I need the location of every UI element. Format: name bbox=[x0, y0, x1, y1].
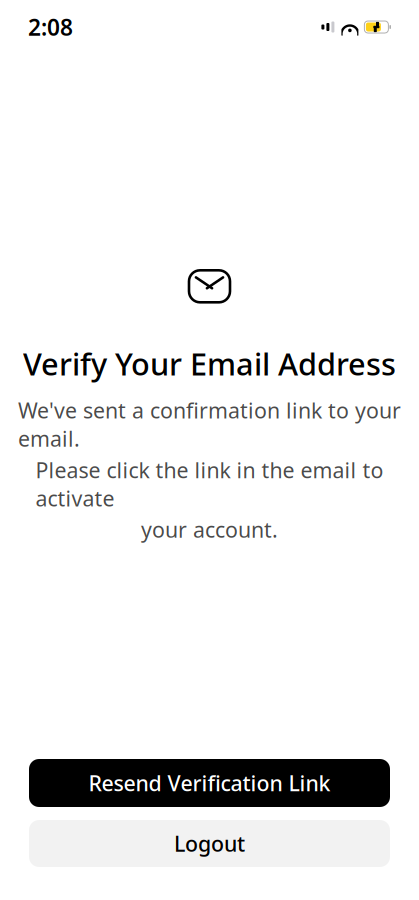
staticText: 2:08 bbox=[28, 12, 73, 42]
staticText: We've sent a confirmation link to your e… bbox=[18, 396, 401, 453]
staticText: your account. bbox=[141, 515, 278, 544]
staticText: Please click the link in the email to ac… bbox=[35, 456, 383, 512]
staticText: Verify Your Email Address bbox=[23, 343, 396, 384]
button[interactable]: Resend Verification Link bbox=[29, 759, 390, 807]
button[interactable]: Logout bbox=[29, 820, 390, 867]
staticText: Logout bbox=[174, 829, 245, 858]
staticText: Resend Verification Link bbox=[88, 769, 330, 797]
